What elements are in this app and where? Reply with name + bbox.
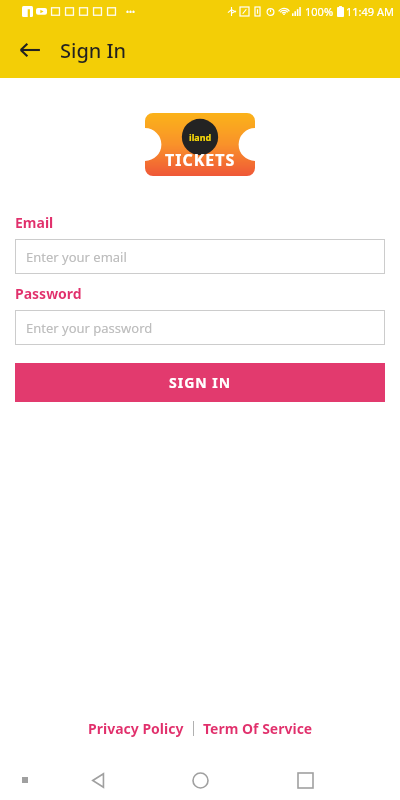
staticText: iland	[189, 131, 212, 143]
staticText: Enter your password	[26, 319, 153, 337]
staticText: TICKETS	[165, 149, 236, 171]
staticText: 11:49 AM	[346, 4, 394, 19]
button[interactable]: Enter your password	[15, 310, 385, 345]
staticText: •••	[126, 6, 136, 17]
staticText: Password	[15, 284, 82, 303]
button[interactable]: Back	[80, 763, 114, 797]
staticText: Email	[15, 213, 54, 232]
button[interactable]: Recent apps	[288, 763, 322, 797]
staticText: SIGN IN	[169, 373, 232, 392]
button[interactable]: Home	[183, 763, 217, 797]
staticText: Term Of Service	[203, 719, 313, 738]
staticText: Privacy Policy	[88, 719, 184, 738]
staticText: Sign In	[60, 37, 127, 64]
button[interactable]: Term Of Service	[203, 719, 313, 738]
staticText: 100%	[305, 4, 334, 19]
staticText: Enter your email	[26, 248, 127, 266]
button[interactable]: Enter your email	[15, 239, 385, 274]
button[interactable]: SIGN IN	[15, 363, 385, 402]
button[interactable]: Privacy Policy	[88, 719, 184, 738]
button[interactable]: Back	[10, 30, 50, 70]
